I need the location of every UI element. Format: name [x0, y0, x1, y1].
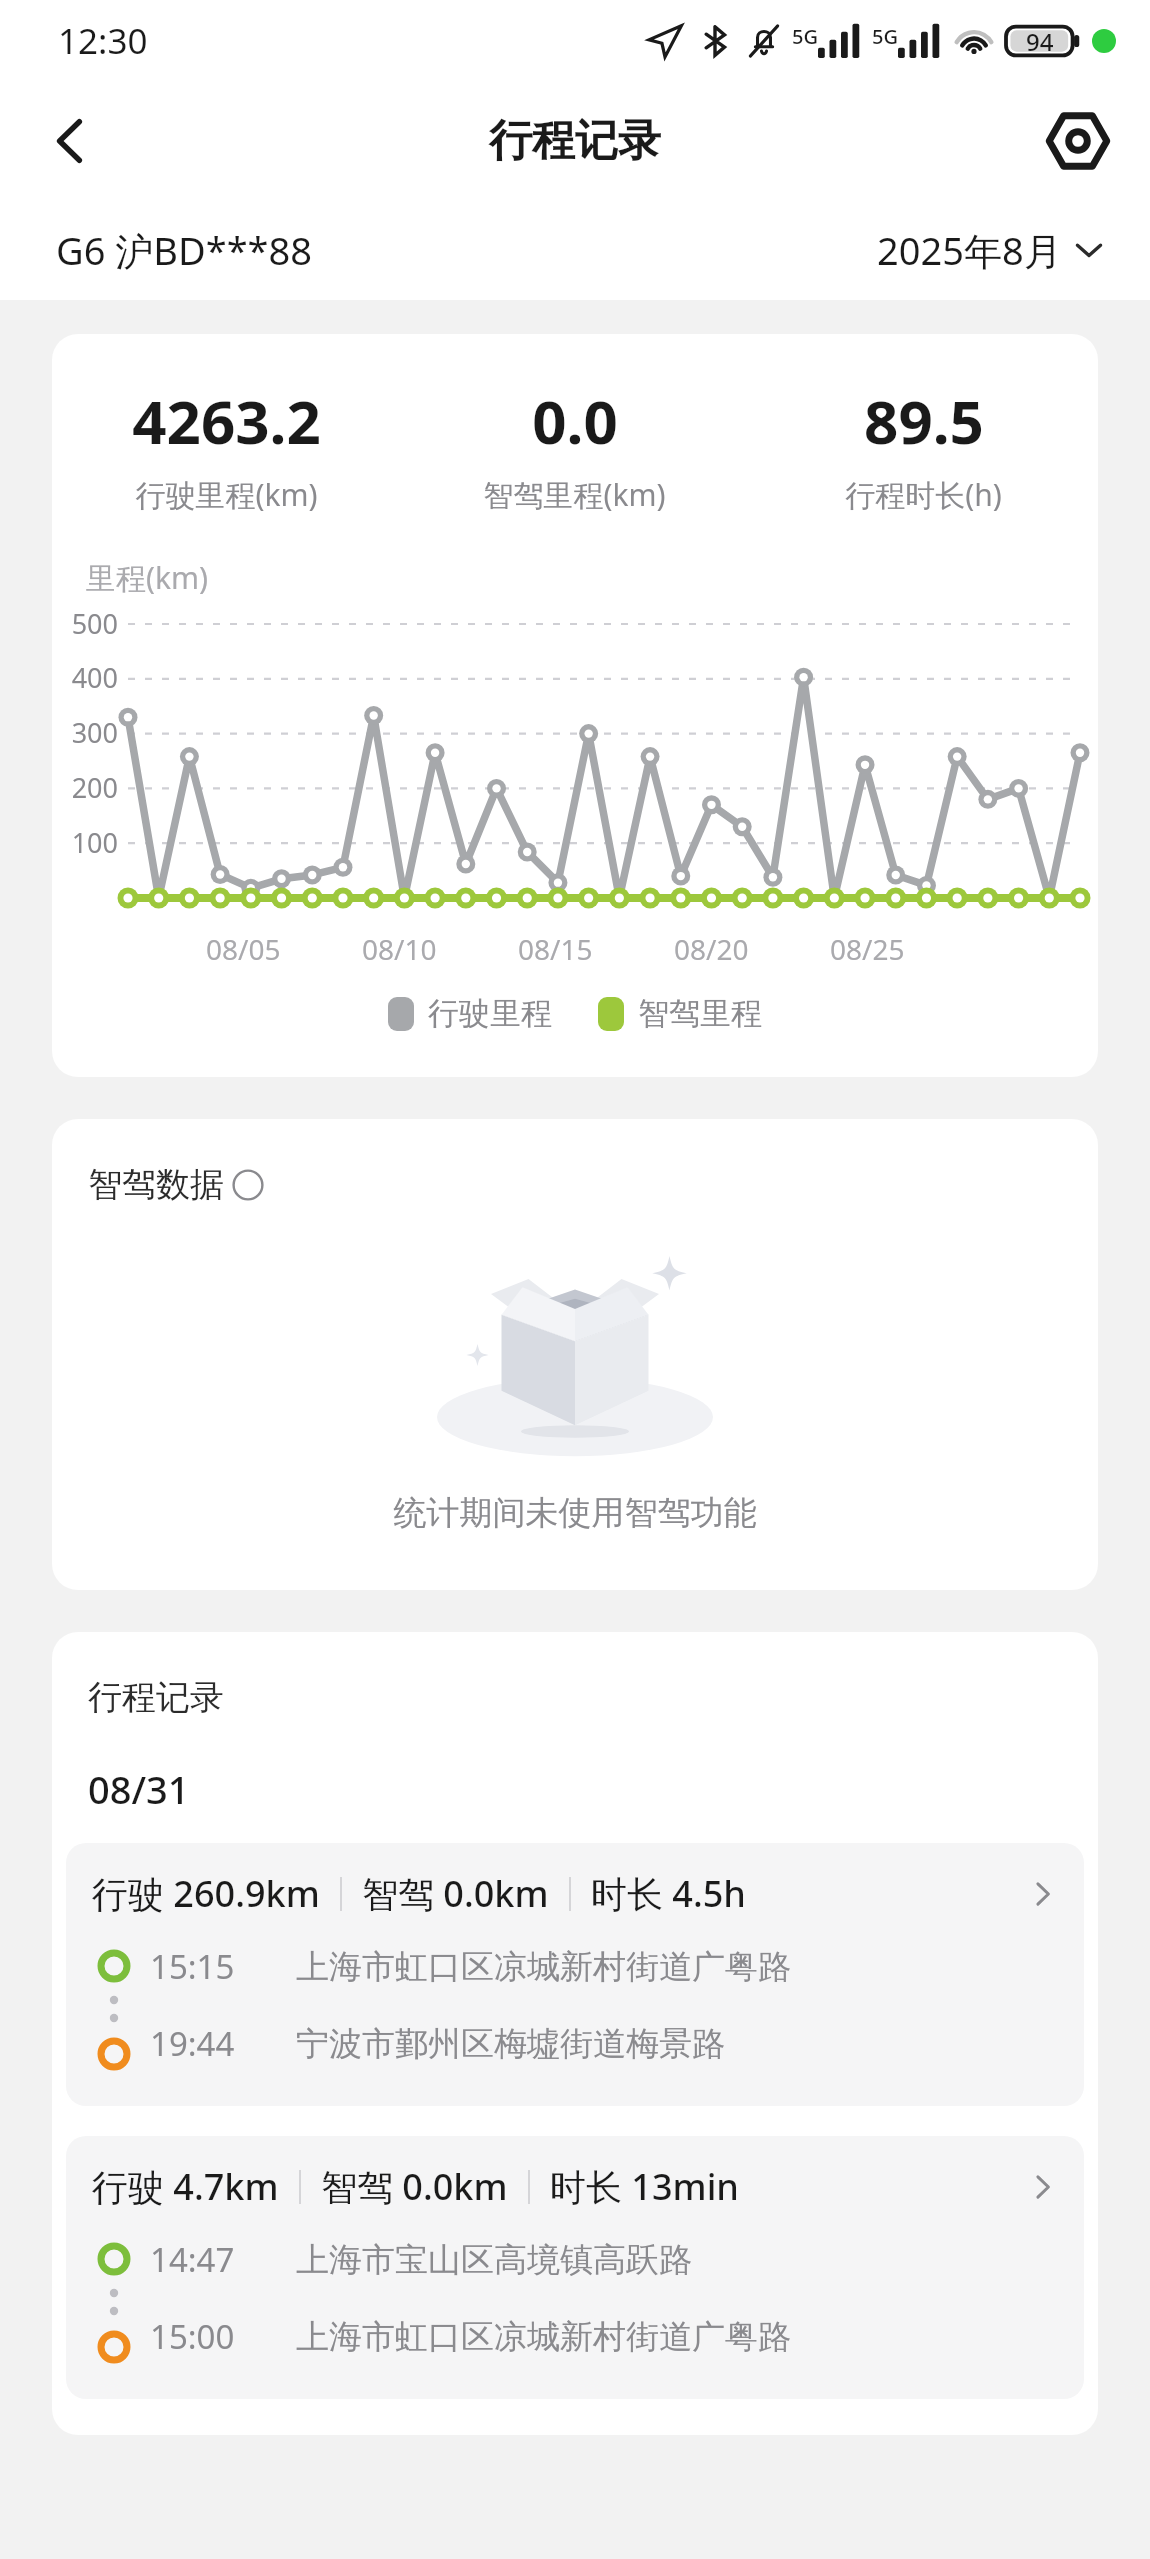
- staticText: 5G: [872, 23, 898, 50]
- staticText: 行程时长(h): [845, 474, 1002, 515]
- staticText: 时长 4.5h: [591, 1869, 746, 1918]
- staticText: 08/15: [518, 930, 593, 968]
- staticText: 智驾数据: [88, 1163, 224, 1206]
- staticText: 15:00: [150, 2314, 266, 2359]
- staticText: 行驶里程(km): [135, 474, 318, 515]
- staticText: 500: [64, 605, 118, 642]
- staticText: 19:44: [150, 2021, 266, 2066]
- staticText: 5G: [792, 23, 818, 50]
- staticText: 行驶里程: [428, 994, 552, 1033]
- staticText: 08/31: [88, 1763, 190, 1815]
- button[interactable]: 2025年8月: [877, 224, 1106, 276]
- staticText: 94: [1026, 25, 1054, 58]
- staticText: 08/10: [362, 930, 437, 968]
- staticText: 上海市虹口区凉城新村街道广粤路: [296, 1946, 791, 1988]
- staticText: 行驶 4.7km: [92, 2162, 279, 2211]
- staticText: 统计期间未使用智驾功能: [52, 1492, 1098, 1534]
- staticText: 100: [64, 824, 118, 861]
- staticText: 2025年8月: [877, 224, 1062, 276]
- staticText: 08/25: [830, 930, 905, 968]
- staticText: 12:30: [58, 17, 148, 65]
- staticText: 里程(km): [86, 557, 209, 598]
- staticText: 89.5: [864, 380, 984, 462]
- button[interactable]: 行驶 4.7km: [66, 2136, 1084, 2399]
- staticText: 智驾里程(km): [483, 474, 666, 515]
- staticText: 时长 13min: [550, 2162, 739, 2211]
- button[interactable]: 智驾数据: [88, 1163, 264, 1206]
- staticText: 智驾里程: [638, 994, 762, 1033]
- staticText: 行程记录: [489, 114, 661, 168]
- staticText: 300: [64, 714, 118, 751]
- staticText: 上海市虹口区凉城新村街道广粤路: [296, 2316, 791, 2358]
- staticText: 0.0: [532, 380, 618, 462]
- staticText: 宁波市鄞州区梅墟街道梅景路: [296, 2023, 725, 2065]
- staticText: G6 沪BD***88: [56, 224, 313, 276]
- staticText: 14:47: [150, 2237, 266, 2282]
- staticText: 上海市宝山区高境镇高跃路: [296, 2239, 692, 2281]
- staticText: 400: [64, 659, 118, 696]
- button[interactable]: Back: [22, 93, 118, 189]
- staticText: 行程记录: [88, 1676, 224, 1719]
- button[interactable]: 行驶 260.9km: [66, 1843, 1084, 2106]
- staticText: 08/05: [206, 930, 281, 968]
- staticText: 15:15: [150, 1944, 266, 1989]
- staticText: 4263.2: [132, 380, 321, 462]
- staticText: 智驾 0.0km: [321, 2162, 508, 2211]
- staticText: 行驶 260.9km: [92, 1869, 320, 1918]
- staticText: 08/20: [674, 930, 749, 968]
- button[interactable]: Settings: [1032, 95, 1124, 187]
- staticText: 智驾 0.0km: [362, 1869, 549, 1918]
- staticText: 200: [64, 769, 118, 806]
